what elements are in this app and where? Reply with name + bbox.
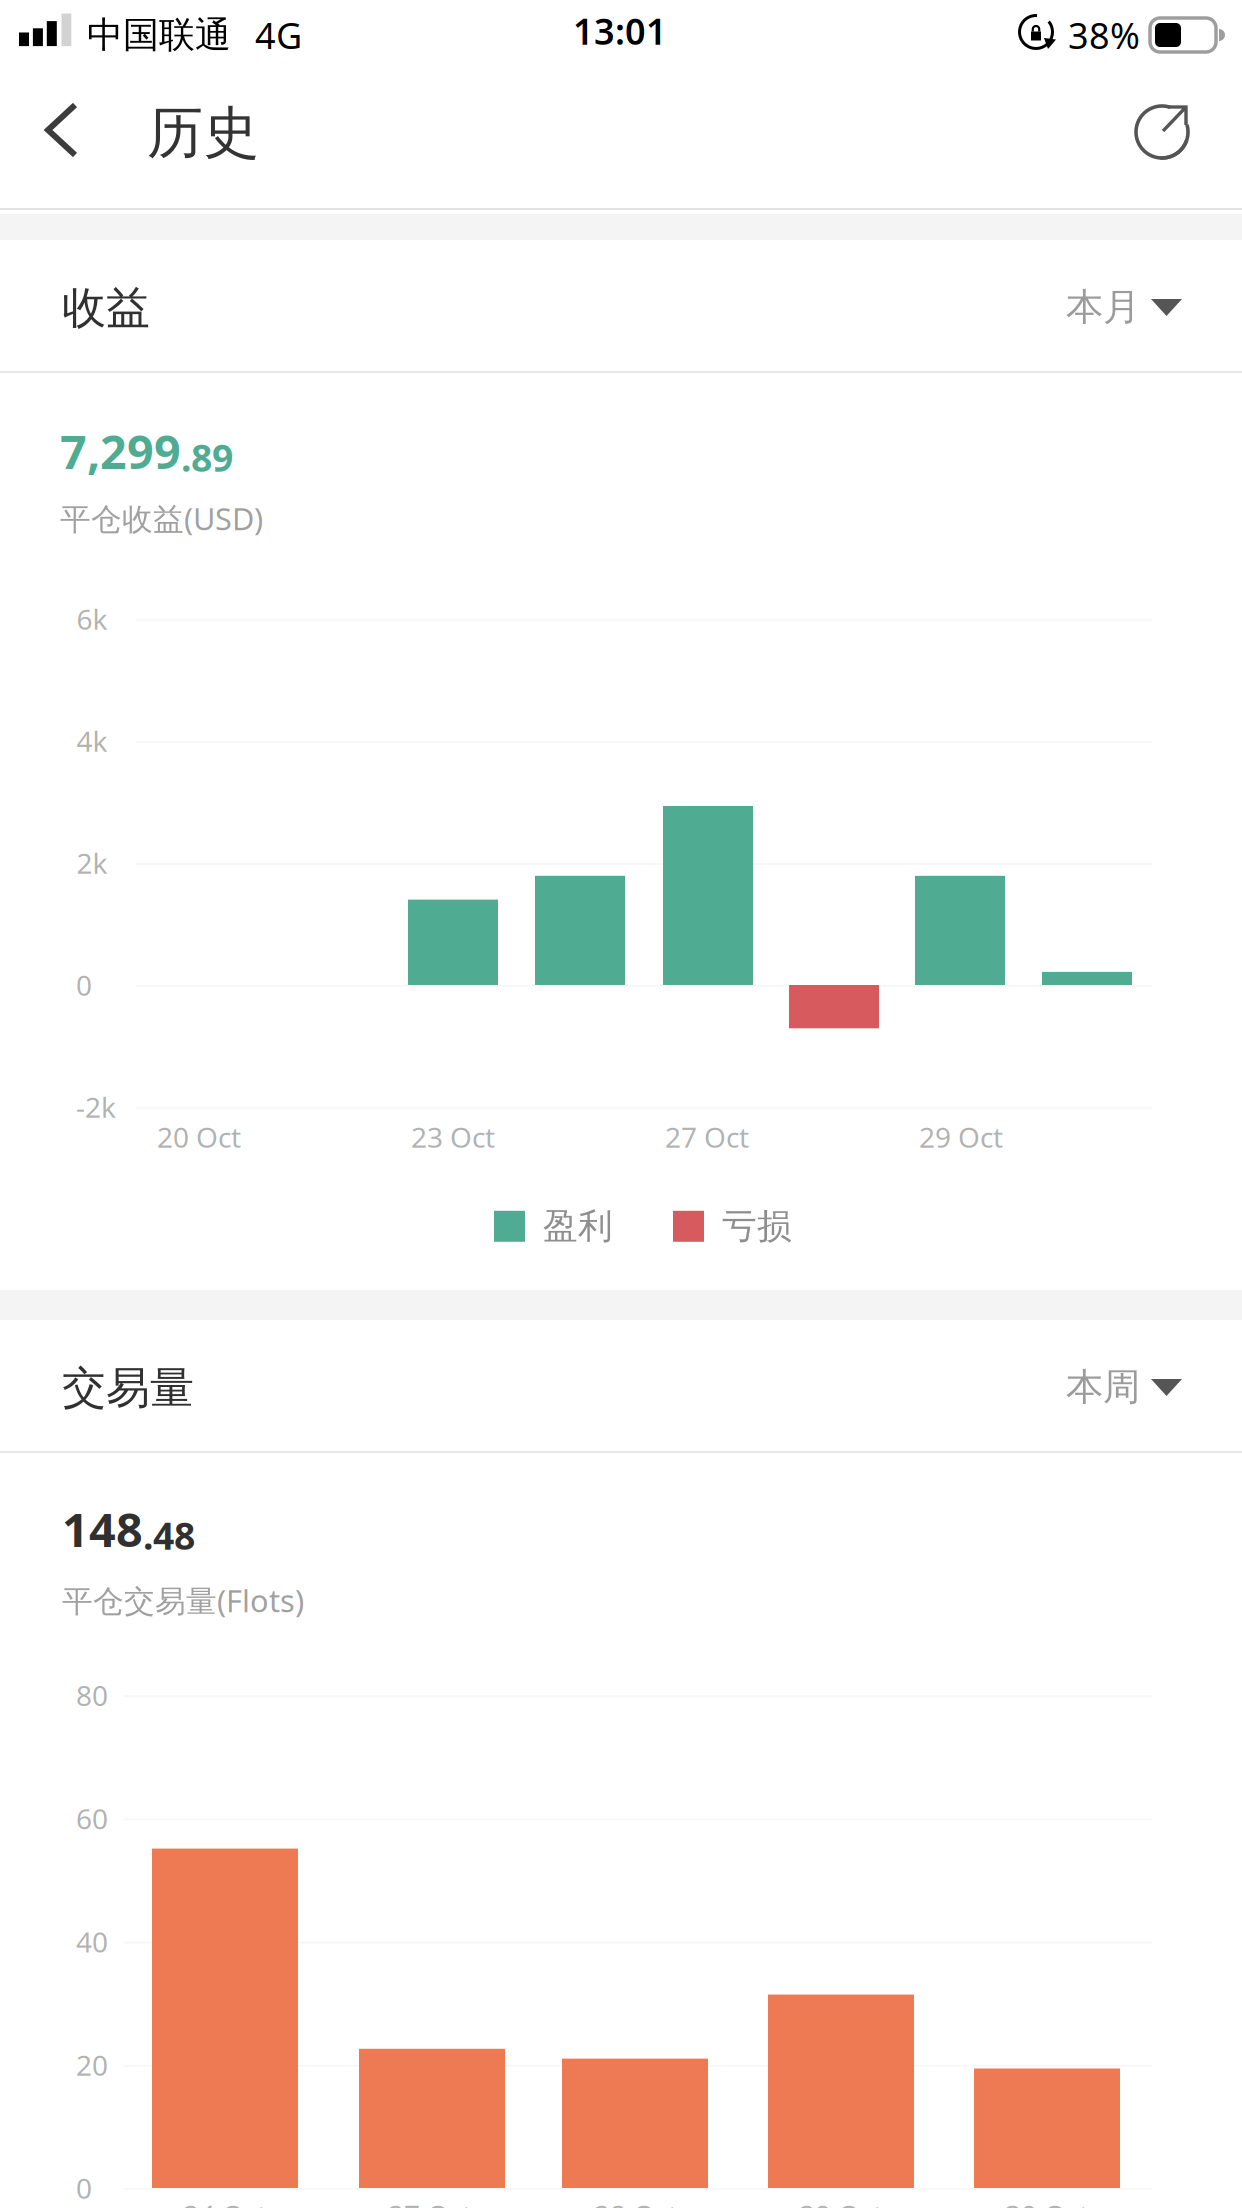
staticText: 4k: [76, 722, 107, 760]
staticText: 历史: [147, 99, 259, 167]
staticText: 40: [76, 1923, 108, 1960]
staticText: 13:01: [573, 7, 667, 55]
staticText: 24 Oct: [183, 2196, 267, 2208]
staticText: -2k: [76, 1088, 116, 1126]
staticText: 60: [76, 1800, 108, 1837]
staticText: 本周: [1066, 1364, 1140, 1410]
staticText: 2k: [76, 844, 107, 882]
button[interactable]: 本周: [1066, 1331, 1182, 1440]
staticText: 4G: [255, 11, 302, 59]
staticText: 交易量: [62, 1361, 194, 1415]
staticText: 收益: [62, 281, 150, 335]
staticText: 148: [62, 1498, 143, 1560]
staticText: 30 Oct: [1005, 2196, 1089, 2208]
staticText: 29 Oct: [799, 2196, 883, 2208]
staticText: 28 Oct: [594, 2196, 678, 2208]
staticText: 平仓交易量(Flots): [62, 1580, 304, 1621]
staticText: 20 Oct: [157, 1118, 241, 1156]
staticText: 27 Oct: [388, 2196, 472, 2208]
staticText: 80: [76, 1677, 108, 1714]
staticText: 38%: [1068, 11, 1140, 59]
staticText: 6k: [76, 600, 107, 638]
staticText: 0: [76, 2169, 92, 2207]
button[interactable]: Back: [0, 71, 107, 207]
staticText: 23 Oct: [411, 1118, 495, 1156]
button[interactable]: Share: [1090, 70, 1242, 208]
button[interactable]: 本月: [1066, 251, 1182, 360]
staticText: 7,299: [60, 420, 181, 482]
staticText: 亏损: [722, 1205, 792, 1248]
staticText: 29 Oct: [919, 1118, 1003, 1156]
staticText: .48: [143, 1510, 195, 1560]
staticText: .89: [181, 432, 233, 482]
staticText: 中国联通: [87, 13, 231, 57]
staticText: 盈利: [543, 1205, 613, 1248]
staticText: 平仓收益(USD): [60, 498, 263, 539]
staticText: 0: [76, 966, 92, 1004]
staticText: 27 Oct: [665, 1118, 749, 1156]
staticText: 20: [76, 2046, 108, 2083]
staticText: 本月: [1066, 284, 1140, 330]
